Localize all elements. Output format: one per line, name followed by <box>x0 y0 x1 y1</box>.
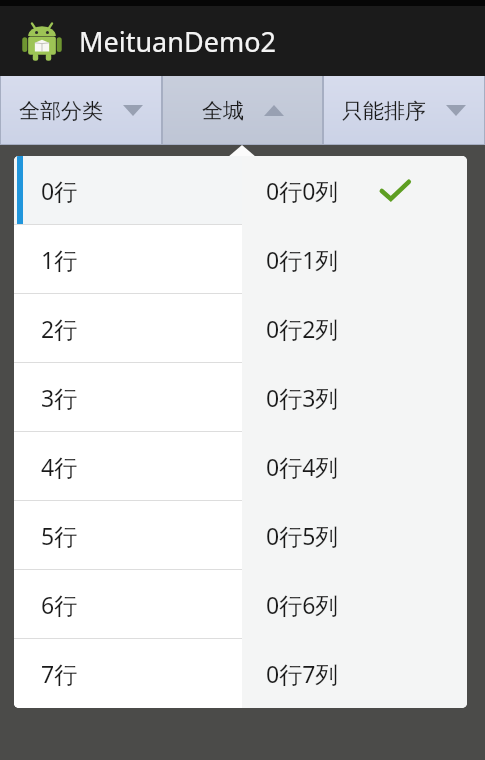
staticText: 3行 <box>41 382 78 413</box>
staticText: 0行5列 <box>266 520 339 551</box>
button[interactable]: 3行 <box>14 363 242 432</box>
staticText: 4行 <box>41 451 78 482</box>
button[interactable]: 5行 <box>14 501 242 570</box>
staticText: 5行 <box>41 520 78 551</box>
staticText: 只能排序 <box>342 98 426 124</box>
button[interactable]: 0行7列 <box>242 639 467 708</box>
staticText: 1行 <box>41 244 78 275</box>
staticText: 0行1列 <box>266 244 339 275</box>
staticText: MeituanDemo2 <box>79 23 276 60</box>
staticText: 0行7列 <box>266 658 339 689</box>
button[interactable]: 0行6列 <box>242 570 467 639</box>
staticText: 全城 <box>202 98 244 124</box>
staticText: 7行 <box>41 658 78 689</box>
button[interactable]: 0行2列 <box>242 294 467 363</box>
other: Selected <box>380 180 410 202</box>
staticText: 0行0列 <box>266 175 339 206</box>
button[interactable]: 1行 <box>14 225 242 294</box>
button[interactable]: 0行3列 <box>242 363 467 432</box>
staticText: 0行 <box>41 175 78 206</box>
button[interactable]: 全城 <box>162 76 323 145</box>
staticText: 6行 <box>41 589 78 620</box>
button[interactable]: 6行 <box>14 570 242 639</box>
staticText: 0行2列 <box>266 313 339 344</box>
staticText: 全部分类 <box>19 98 103 124</box>
staticText: 0行6列 <box>266 589 339 620</box>
button[interactable]: 0行1列 <box>242 225 467 294</box>
staticText: 2行 <box>41 313 78 344</box>
button[interactable]: 全部分类 <box>0 76 162 145</box>
button[interactable]: 0行0列 <box>242 156 467 225</box>
button[interactable]: 2行 <box>14 294 242 363</box>
button[interactable]: 只能排序 <box>323 76 485 145</box>
staticText: 0行4列 <box>266 451 339 482</box>
button[interactable]: 0行4列 <box>242 432 467 501</box>
button[interactable]: 0行5列 <box>242 501 467 570</box>
button[interactable]: 7行 <box>14 639 242 708</box>
button[interactable]: 0行 <box>14 156 242 225</box>
button[interactable]: 4行 <box>14 432 242 501</box>
staticText: 0行3列 <box>266 382 339 413</box>
